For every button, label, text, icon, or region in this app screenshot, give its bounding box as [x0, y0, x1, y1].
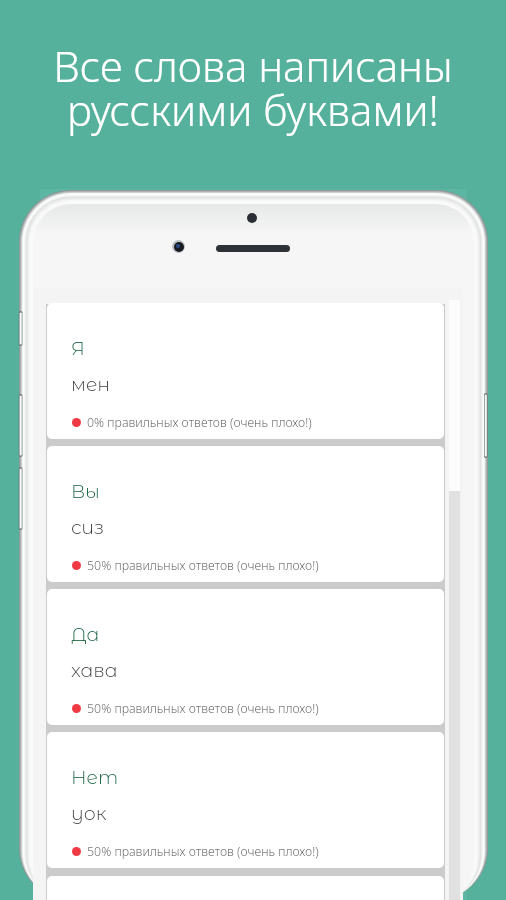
button[interactable]: Вы — [47, 446, 444, 582]
staticText: мен — [71, 373, 110, 396]
staticText: Все слова написаны русскими буквами! — [53, 37, 453, 138]
staticText: Вы — [71, 480, 100, 503]
staticText: уок — [71, 802, 107, 825]
staticText: хава — [71, 659, 118, 682]
staticText: сиз — [71, 516, 104, 539]
button[interactable]: Да — [47, 589, 444, 725]
staticText: 50% правильных ответов (очень плохо!) — [87, 700, 319, 717]
staticText: 0% правильных ответов (очень плохо!) — [87, 414, 312, 431]
button[interactable]: Я — [47, 303, 444, 439]
staticText: Да — [71, 623, 100, 646]
staticText: Нет — [71, 766, 119, 789]
button[interactable]: Нет — [47, 732, 444, 868]
staticText: 50% правильных ответов (очень плохо!) — [87, 843, 319, 860]
staticText: 50% правильных ответов (очень плохо!) — [87, 557, 319, 574]
staticText: Я — [71, 337, 85, 360]
